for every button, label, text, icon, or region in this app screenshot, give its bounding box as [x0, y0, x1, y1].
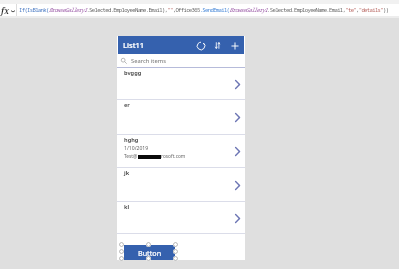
staticText: Button	[138, 248, 162, 258]
button[interactable]: bvggg	[117, 68, 245, 100]
staticText: fx	[1, 5, 10, 16]
button[interactable]: Refresh	[192, 37, 209, 54]
button[interactable]: hghg	[117, 135, 245, 168]
button[interactable]: kl	[117, 202, 245, 234]
staticText: kl	[124, 203, 130, 211]
staticText: Search items	[131, 57, 166, 65]
staticText: bvggg	[124, 69, 142, 77]
button[interactable]: er	[117, 100, 245, 135]
staticText: 1/10/2019	[124, 145, 149, 152]
button[interactable]: Button	[124, 245, 175, 260]
button[interactable]: Add	[226, 37, 243, 54]
staticText: List11	[123, 40, 145, 50]
staticText: If(IsBlank(BrowseGallery1.Selected.Emplo…	[19, 6, 389, 14]
button[interactable]: Search items	[121, 54, 245, 67]
staticText: er	[124, 101, 130, 109]
button[interactable]: Sort	[209, 37, 226, 54]
staticText: rosoft.com	[161, 153, 186, 160]
button[interactable]: Formula options	[0, 4, 16, 16]
staticText: jk	[124, 169, 130, 177]
staticText: hghg	[124, 136, 139, 144]
staticText: Test@	[124, 153, 138, 160]
button[interactable]: jk	[117, 168, 245, 202]
